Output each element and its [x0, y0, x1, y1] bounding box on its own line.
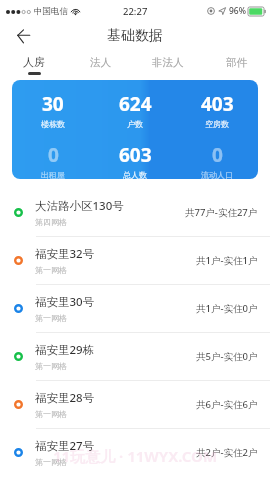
button[interactable]: 福安里29栋: [0, 333, 270, 380]
staticText: 福安里29栋: [35, 342, 95, 358]
staticText: 共6户-实住6户: [196, 398, 258, 411]
staticText: 第一网格: [35, 409, 67, 419]
staticText: 共2户-实住2户: [196, 446, 258, 459]
staticText: 第一网格: [35, 361, 67, 371]
staticText: 空房数: [205, 119, 229, 129]
staticText: 共5户-实住0户: [196, 350, 258, 363]
staticText: 总人数: [123, 170, 147, 179]
staticText: 第一网格: [35, 313, 67, 323]
staticText: 624: [119, 91, 152, 117]
staticText: 福安里30号: [35, 294, 95, 310]
staticText: 户数: [127, 119, 143, 129]
staticText: 基础数据: [107, 27, 163, 45]
staticText: 大沽路小区130号: [35, 198, 124, 214]
staticText: 中国电信: [34, 6, 68, 17]
staticText: 0: [212, 142, 223, 168]
staticText: 30: [42, 91, 64, 117]
staticText: 法人: [90, 56, 111, 69]
staticText: 403: [201, 91, 234, 117]
staticText: 共1户-实住0户: [196, 302, 258, 315]
button[interactable]: 部件: [202, 50, 270, 80]
button[interactable]: 福安里32号: [0, 237, 270, 284]
button[interactable]: 法人: [67, 50, 134, 80]
button[interactable]: Back: [8, 22, 38, 50]
staticText: 楼栋数: [41, 119, 65, 129]
staticText: 福安里32号: [35, 246, 95, 262]
staticText: 流动人口: [201, 170, 233, 179]
staticText: 11玩意儿 · 11WYX.COM: [53, 446, 218, 466]
staticText: 22:27: [123, 5, 148, 18]
button[interactable]: 非法人: [134, 50, 202, 80]
button[interactable]: 福安里30号: [0, 285, 270, 332]
staticText: 福安里28号: [35, 390, 95, 406]
staticText: 共77户-实住27户: [185, 206, 258, 219]
button[interactable]: 30: [12, 80, 258, 179]
staticText: 非法人: [152, 56, 184, 69]
button[interactable]: 福安里28号: [0, 381, 270, 428]
staticText: 出租屋: [41, 170, 65, 179]
staticText: 共1户-实住1户: [196, 254, 258, 267]
staticText: 第一网格: [35, 457, 67, 467]
button[interactable]: 大沽路小区130号: [0, 189, 270, 236]
staticText: 603: [119, 142, 152, 168]
staticText: 0: [48, 142, 59, 168]
staticText: 96%: [229, 5, 246, 17]
staticText: 第四网格: [35, 217, 67, 227]
button[interactable]: 人房: [0, 50, 67, 80]
button[interactable]: 福安里27号: [0, 429, 270, 476]
staticText: 福安里27号: [35, 438, 95, 454]
staticText: 部件: [226, 56, 247, 69]
staticText: 第一网格: [35, 265, 67, 275]
staticText: 人房: [23, 55, 45, 69]
